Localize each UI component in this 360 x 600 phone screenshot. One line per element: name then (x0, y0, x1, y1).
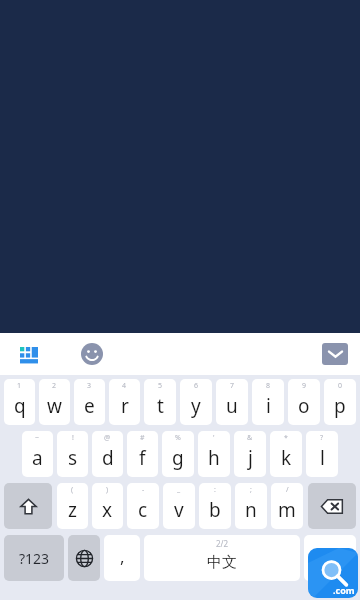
staticText: 1 (17, 381, 22, 391)
staticText: ~ (35, 433, 40, 443)
staticText: , (120, 545, 125, 568)
staticText: c (138, 497, 148, 523)
staticText: 中文 (207, 553, 237, 572)
button[interactable]: 6 (180, 379, 212, 425)
staticText: w (47, 393, 62, 419)
staticText: i (266, 393, 271, 419)
button[interactable]: % (162, 431, 194, 477)
staticText: k (281, 445, 292, 471)
staticText: 8 (266, 381, 271, 391)
staticText: m (278, 497, 296, 523)
staticText: - (142, 485, 145, 495)
button[interactable]: 4 (109, 379, 140, 425)
button[interactable]: Backspace (308, 483, 356, 529)
staticText: ' (213, 433, 215, 443)
staticText: & (247, 433, 253, 443)
button[interactable]: ~ (22, 431, 53, 477)
staticText: o (298, 393, 310, 419)
button[interactable]: Space (144, 535, 300, 581)
button[interactable]: , (104, 535, 140, 581)
staticText: y (191, 393, 201, 419)
staticText: 3 (87, 381, 92, 391)
button[interactable]: ? (306, 431, 338, 477)
button[interactable]: / (271, 483, 303, 529)
staticText: n (245, 497, 257, 523)
button[interactable]: - (127, 483, 159, 529)
staticText: 6 (194, 381, 199, 391)
button[interactable]: ( (57, 483, 88, 529)
staticText: j (248, 445, 253, 471)
staticText: ? (320, 433, 324, 443)
button[interactable]: 7 (216, 379, 248, 425)
button[interactable]: 3 (74, 379, 105, 425)
staticText: @ (104, 433, 111, 443)
staticText: e (84, 393, 95, 419)
staticText: .com (333, 584, 355, 596)
staticText: / (286, 485, 289, 495)
button[interactable]: ! (57, 431, 88, 477)
staticText: 0 (338, 381, 343, 391)
staticText: t (157, 393, 164, 419)
button[interactable]: 5 (144, 379, 176, 425)
button[interactable]: & (234, 431, 266, 477)
staticText: ; (250, 485, 252, 495)
staticText: 7 (230, 381, 235, 391)
button[interactable]: ?123 (4, 535, 64, 581)
staticText: 5 (158, 381, 163, 391)
staticText: 4 (122, 381, 127, 391)
button[interactable]: : (199, 483, 231, 529)
staticText: * (284, 433, 288, 443)
button[interactable]: ' (198, 431, 230, 477)
button[interactable]: _ (163, 483, 195, 529)
staticText: f (139, 445, 146, 471)
staticText: 2/2 (216, 538, 229, 549)
staticText: d (102, 445, 114, 471)
staticText: s (68, 445, 78, 471)
button[interactable]: ; (235, 483, 267, 529)
staticText: ! (72, 433, 74, 443)
staticText: b (209, 497, 221, 523)
staticText: v (174, 497, 184, 523)
staticText: q (14, 393, 26, 419)
button[interactable]: Shift (4, 483, 52, 529)
staticText: 9 (302, 381, 307, 391)
staticText: a (32, 445, 43, 471)
button[interactable]: # (127, 431, 158, 477)
staticText: : (214, 485, 216, 495)
button[interactable]: Enter (304, 535, 356, 581)
staticText: ( (71, 485, 74, 495)
staticText: ) (106, 485, 109, 495)
staticText: z (68, 497, 77, 523)
button[interactable]: 8 (252, 379, 284, 425)
button[interactable]: Change language (68, 535, 100, 581)
button[interactable]: 0 (324, 379, 356, 425)
staticText: g (172, 445, 184, 471)
staticText: u (226, 393, 238, 419)
button[interactable]: 9 (288, 379, 320, 425)
button[interactable]: * (270, 431, 302, 477)
staticText: # (140, 433, 145, 443)
staticText: ?123 (19, 549, 50, 568)
staticText: h (208, 445, 220, 471)
button[interactable]: Keyboard layouts (14, 339, 44, 369)
button[interactable]: Hide keyboard (322, 343, 348, 365)
staticText: r (121, 393, 129, 419)
button[interactable]: ) (92, 483, 123, 529)
button[interactable]: 1 (4, 379, 35, 425)
button[interactable]: @ (92, 431, 123, 477)
staticText: _ (177, 485, 181, 495)
button[interactable]: 2 (39, 379, 70, 425)
staticText: l (320, 445, 325, 471)
staticText: % (175, 433, 181, 443)
staticText: p (334, 393, 346, 419)
staticText: 2 (52, 381, 57, 391)
staticText: x (102, 497, 113, 523)
button[interactable]: Emoji (76, 338, 108, 370)
